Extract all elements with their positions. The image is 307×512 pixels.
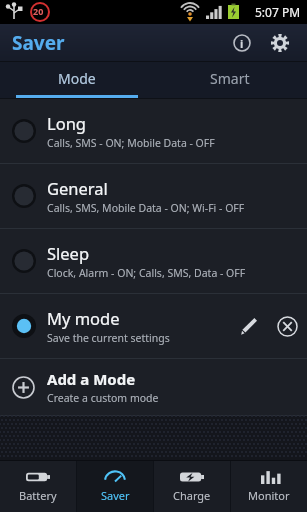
button[interactable]: Smart (153, 62, 307, 95)
staticText: 20 (33, 5, 44, 17)
staticText: 5:07 PM (255, 4, 301, 20)
staticText: Saver (12, 30, 65, 56)
staticText: i (240, 36, 244, 51)
button[interactable]: Monitor (231, 460, 307, 512)
staticText: Charge (173, 488, 211, 503)
staticText: Clock, Alarm - ON; Calls, SMS, Data - OF… (47, 266, 246, 280)
button[interactable]: Settings (263, 26, 297, 60)
button[interactable]: Battery (0, 460, 76, 512)
staticText: Calls, SMS, Mobile Data - ON; Wi-Fi - OF… (47, 201, 245, 215)
button[interactable]: Edit (229, 307, 267, 345)
staticText: Save the current settings (47, 331, 170, 345)
staticText: Saver (101, 488, 130, 503)
staticText: Create a custom mode (47, 391, 159, 405)
button[interactable]: My mode (0, 294, 307, 358)
button[interactable]: Sleep (0, 229, 307, 293)
staticText: Sleep (47, 242, 90, 264)
button[interactable]: Saver (77, 460, 153, 512)
staticText: Smart (210, 69, 250, 88)
button[interactable]: Charge (154, 460, 230, 512)
button[interactable]: Info (225, 26, 259, 60)
staticText: Monitor (248, 488, 290, 503)
button[interactable]: Delete (267, 306, 307, 346)
button[interactable]: Long (0, 99, 307, 163)
button[interactable]: Mode (0, 62, 153, 95)
staticText: Battery (19, 488, 57, 503)
button[interactable]: General (0, 164, 307, 228)
button[interactable]: Add a Mode (0, 359, 307, 415)
staticText: Long (47, 112, 86, 134)
staticText: General (47, 177, 108, 199)
staticText: Calls, SMS - ON; Mobile Data - OFF (47, 136, 215, 150)
staticText: My mode (47, 307, 120, 329)
staticText: Mode (58, 69, 96, 88)
staticText: Add a Mode (47, 369, 136, 389)
